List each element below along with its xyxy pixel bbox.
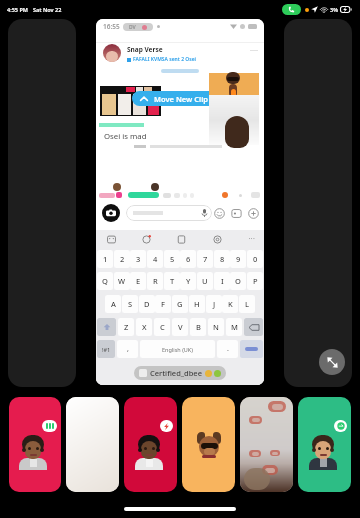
button[interactable]: T [164,272,180,290]
button[interactable]: 3 [130,250,146,268]
button[interactable]: Resize window [319,349,345,375]
button[interactable]: W [114,272,130,290]
button[interactable]: S [122,295,138,313]
button[interactable]: , [117,340,138,358]
button[interactable]: K [222,295,238,313]
button[interactable]: Recent app 2 [66,397,119,492]
button[interactable]: C [154,318,170,336]
staticText: . [227,344,229,354]
button[interactable]: Q [97,272,113,290]
staticText: L [245,299,250,309]
button[interactable]: Symbols [97,340,115,358]
button[interactable]: Emoji [213,207,225,219]
button[interactable]: R [147,272,163,290]
staticText: T [170,276,175,286]
button[interactable]: U [197,272,213,290]
button[interactable]: I [214,272,230,290]
button[interactable]: O [230,272,246,290]
staticText: Q [102,276,108,286]
button[interactable]: Recent app 6 [298,397,351,492]
button[interactable]: Certified_dbee [134,366,226,380]
button[interactable]: Y [180,272,196,290]
staticText: I [221,276,224,286]
button[interactable]: 1 [97,250,113,268]
button[interactable]: D [139,295,155,313]
button[interactable]: Camera [102,204,120,222]
staticText: J [213,299,216,309]
staticText: C [160,322,165,332]
button[interactable]: Shift [97,318,116,336]
button[interactable]: Keyboard tool 4 [212,234,222,244]
button[interactable]: 2 [114,250,130,268]
staticText: N [213,322,219,332]
staticText: O [235,276,241,286]
button[interactable]: L [239,295,255,313]
button[interactable]: X [136,318,152,336]
staticText: , [127,344,129,354]
staticText: English (UK) [162,346,193,353]
staticText: 7 [203,254,208,264]
staticText: FAFALI KVMSA sent 2 Osei [133,56,197,63]
staticText: P [253,276,258,286]
button[interactable]: E [130,272,146,290]
button[interactable]: N [208,318,224,336]
button[interactable]: B [190,318,206,336]
button[interactable]: A [105,295,121,313]
button[interactable]: M [226,318,242,336]
button[interactable]: Recent app 3 [124,397,177,492]
button[interactable]: Keyboard tool 3 [176,234,186,244]
staticText: A [111,299,116,309]
button[interactable]: Backspace [244,318,263,336]
button[interactable]: Add [247,207,259,219]
staticText: 6 [186,254,191,264]
button[interactable]: Ongoing call [282,4,301,15]
button[interactable]: 9 [230,250,246,268]
button[interactable]: 7 [197,250,213,268]
button[interactable]: 0 [247,250,263,268]
staticText: Snap Verse [127,45,163,54]
button[interactable]: Recent app 5 [240,397,293,492]
button[interactable]: J [206,295,222,313]
staticText: 16:55 [103,22,120,31]
staticText: H [194,299,200,309]
button[interactable]: Z [118,318,134,336]
button[interactable]: Recent app 4 [182,397,235,492]
button[interactable]: 4 [147,250,163,268]
staticText: D [144,299,150,309]
button[interactable]: Move New Clip [132,91,222,106]
button[interactable]: V [172,318,188,336]
button[interactable]: Keyboard tool 2 [141,234,151,244]
button[interactable]: Recent app 1 [9,397,61,492]
button[interactable]: Keyboard tool 1 [106,234,116,244]
staticText: K [228,299,233,309]
button[interactable]: . [217,340,238,358]
button[interactable]: 8 [214,250,230,268]
button[interactable]: 5 [164,250,180,268]
staticText: 3% [330,6,338,13]
button[interactable]: English (UK) [140,340,215,358]
staticText: ⋯ [248,235,255,243]
staticText: W [118,276,126,286]
staticText: 8 [220,254,225,264]
button[interactable]: Snapchat preview [96,19,264,385]
staticText: S [128,299,133,309]
staticText: X [142,322,147,332]
staticText: V [178,322,183,332]
button[interactable]: Stickers [230,207,242,219]
staticText: Y [186,276,191,286]
staticText: 1 [103,254,108,264]
button[interactable]: Enter [240,340,263,358]
staticText: Move New Clip [154,94,208,104]
staticText: 2 [120,254,125,264]
button[interactable]: Next recent app [284,19,352,387]
staticText: Certified_dbee [150,368,202,378]
button[interactable]: F [155,295,171,313]
button[interactable]: H [189,295,205,313]
button[interactable] [126,205,212,221]
staticText: 4 [153,254,158,264]
staticText: E [136,276,141,286]
button[interactable]: G [172,295,188,313]
button[interactable]: 6 [180,250,196,268]
button[interactable]: P [247,272,263,290]
